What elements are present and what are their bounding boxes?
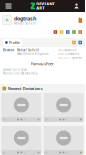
staticText: Profile xyxy=(9,40,20,45)
staticText: Michael Scofield xyxy=(14,22,36,25)
staticText: Deviant for 6 Years xyxy=(3,68,27,71)
button[interactable]: Profile xyxy=(3,39,22,46)
staticText: ART xyxy=(36,5,44,11)
staticText: 36,951 Pageviews xyxy=(58,56,82,59)
staticText: FamousFeet xyxy=(31,61,54,66)
staticText: Michael Scofield xyxy=(17,48,39,52)
button[interactable]: Deviation xyxy=(1,126,41,155)
button[interactable]: Menu xyxy=(3,0,14,12)
staticText: Male/United Kingdom xyxy=(17,52,48,56)
staticText: Needs Core Membership xyxy=(3,72,38,75)
staticText: 38 Deviations xyxy=(58,48,76,52)
button[interactable]: Deviation xyxy=(1,93,41,122)
staticText: Deviant xyxy=(3,48,14,52)
button[interactable]: Account xyxy=(71,0,82,12)
button[interactable]: Deviation xyxy=(44,126,84,155)
staticText: 206 Comments xyxy=(58,52,79,56)
staticText: Newest Deviations xyxy=(8,86,43,91)
staticText: DEVIANT xyxy=(36,1,54,7)
button[interactable]: Deviation xyxy=(44,93,84,122)
staticText: dogtrash xyxy=(14,15,36,22)
